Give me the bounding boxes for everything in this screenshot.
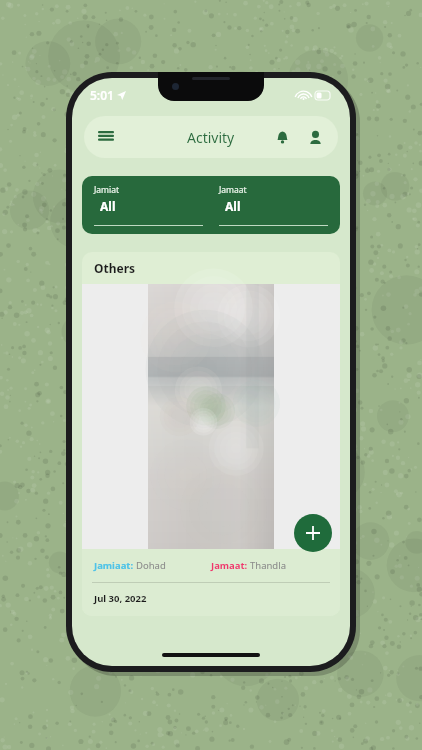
- button[interactable]: Profile: [301, 123, 338, 152]
- button[interactable]: Others: [82, 252, 340, 284]
- button[interactable]: Add: [294, 514, 332, 552]
- staticText: Others: [94, 260, 136, 276]
- staticText: Jul 30, 2022: [94, 592, 147, 605]
- staticText: Jamaat:: [211, 559, 250, 572]
- button[interactable]: Jamaat: [219, 184, 328, 226]
- staticText: Jamiaat:: [94, 559, 136, 572]
- staticText: Jamiat: [94, 184, 120, 196]
- button[interactable]: Menu: [84, 123, 128, 151]
- staticText: Dohad: [136, 559, 166, 572]
- staticText: All: [100, 198, 116, 214]
- button[interactable]: Notifications: [268, 123, 297, 152]
- staticText: Thandla: [250, 559, 286, 572]
- staticText: Jamaat: [219, 184, 247, 196]
- staticText: 5:01: [90, 87, 114, 103]
- button[interactable]: Jamiat: [94, 184, 203, 226]
- staticText: All: [225, 198, 241, 214]
- staticText: Activity: [187, 128, 235, 147]
